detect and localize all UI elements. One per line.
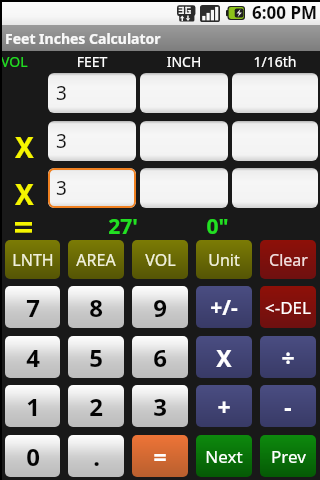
staticText: 3 — [56, 80, 67, 106]
staticText: = — [153, 441, 167, 472]
button[interactable] — [232, 73, 318, 113]
button[interactable] — [140, 168, 228, 208]
button[interactable] — [232, 121, 318, 161]
button[interactable] — [140, 121, 228, 161]
staticText: 1 — [26, 390, 40, 423]
button[interactable]: 3 — [48, 121, 136, 161]
button[interactable]: 8 — [68, 286, 124, 328]
staticText: 2 — [89, 390, 103, 423]
staticText: . — [93, 440, 100, 473]
staticText: - — [284, 391, 292, 422]
staticText: X — [216, 342, 232, 373]
staticText: 0" — [198, 212, 237, 241]
staticText: 6:00 PM — [252, 1, 317, 24]
staticText: 3 — [56, 175, 67, 201]
staticText: 0 — [26, 440, 40, 473]
button[interactable]: LNTH — [5, 240, 60, 279]
other: Signal strength — [200, 3, 220, 22]
button[interactable]: = — [132, 435, 188, 477]
staticText: 6 — [153, 341, 167, 374]
button[interactable]: X — [196, 336, 252, 378]
button[interactable]: 3 — [48, 168, 136, 208]
staticText: Next — [205, 445, 243, 468]
staticText: AREA — [76, 249, 116, 271]
button[interactable]: 2 — [68, 385, 124, 427]
staticText: <-DEL — [265, 296, 311, 319]
staticText: X — [15, 128, 34, 166]
staticText: FEET — [48, 52, 136, 71]
button[interactable]: 4 — [5, 336, 60, 378]
button[interactable]: 9 — [132, 286, 188, 328]
staticText: 3 — [153, 390, 167, 423]
button[interactable]: 3 — [48, 73, 136, 113]
staticText: 7 — [26, 291, 40, 324]
button[interactable]: 5 — [68, 336, 124, 378]
staticText: Prev — [271, 445, 306, 468]
staticText: 4 — [26, 341, 40, 374]
button[interactable]: 7 — [5, 286, 60, 328]
button[interactable]: Unit — [196, 240, 252, 279]
staticText: +/- — [210, 293, 238, 322]
staticText: X — [15, 175, 34, 213]
staticText: 8 — [89, 291, 103, 324]
button[interactable]: 0 — [5, 435, 60, 477]
button[interactable]: 3 — [132, 385, 188, 427]
button[interactable]: Next — [196, 435, 252, 477]
button[interactable] — [232, 168, 318, 208]
staticText: VOL — [1, 52, 48, 71]
button[interactable]: Clear — [260, 240, 316, 279]
staticText: 3 — [56, 128, 67, 154]
staticText: VOL — [145, 249, 176, 271]
button[interactable]: AREA — [68, 240, 124, 279]
button[interactable]: 6 — [132, 336, 188, 378]
button[interactable]: +/- — [196, 286, 252, 328]
staticText: Feet Inches Calculator — [5, 29, 161, 48]
staticText: ÷ — [281, 342, 295, 373]
staticText: 27' — [48, 212, 198, 241]
button[interactable]: VOL — [132, 240, 188, 279]
staticText: Clear — [269, 249, 308, 271]
other: 3G network — [177, 3, 196, 22]
button[interactable]: Prev — [260, 435, 316, 477]
button[interactable]: - — [260, 385, 316, 427]
staticText: 1/16th — [232, 52, 318, 71]
button[interactable]: ÷ — [260, 336, 316, 378]
button[interactable] — [140, 73, 228, 113]
staticText: 5 — [89, 341, 103, 374]
button[interactable]: + — [196, 385, 252, 427]
staticText: 9 — [153, 291, 167, 324]
button[interactable]: <-DEL — [260, 286, 316, 328]
other: Battery charging — [226, 6, 245, 20]
staticText: + — [217, 391, 231, 422]
button[interactable]: 1 — [5, 385, 60, 427]
staticText: Unit — [208, 249, 240, 271]
staticText: INCH — [140, 52, 228, 71]
button[interactable]: . — [68, 435, 124, 477]
staticText: LNTH — [12, 249, 54, 271]
